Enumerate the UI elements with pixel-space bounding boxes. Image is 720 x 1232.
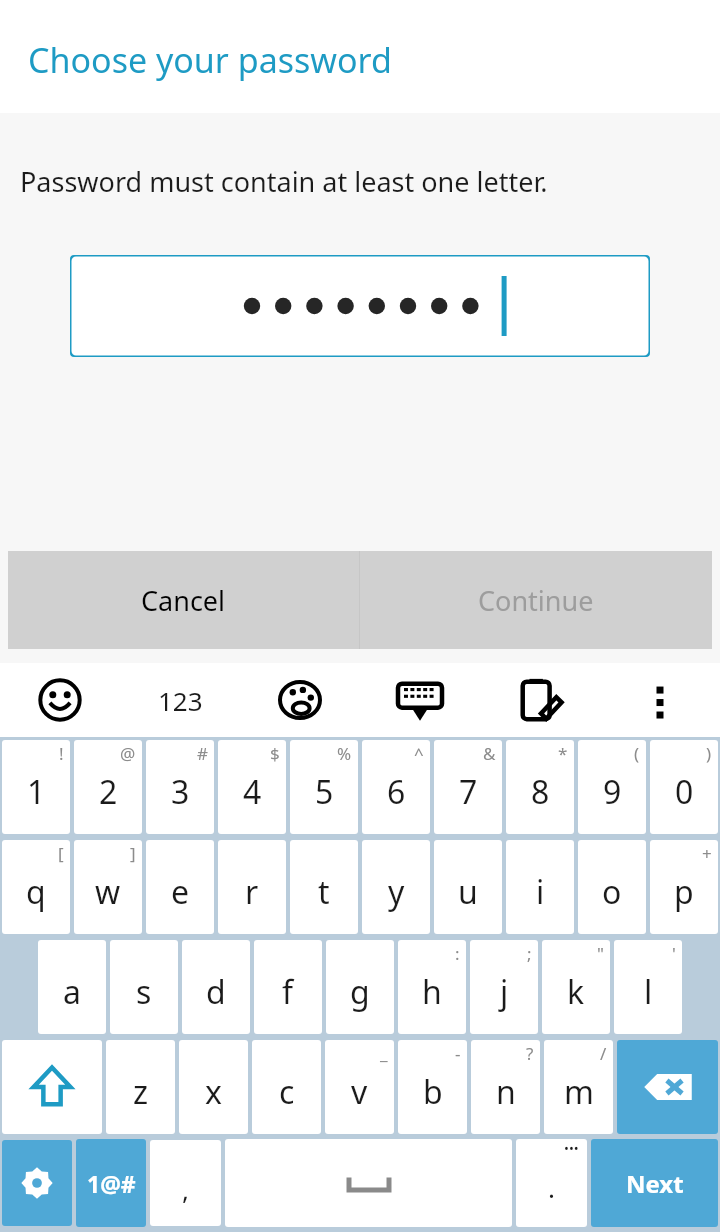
staticText: [: [58, 842, 64, 865]
staticText: ^: [414, 742, 424, 765]
staticText: f: [282, 970, 294, 1014]
staticText: @: [120, 742, 136, 765]
staticText: 2: [99, 770, 118, 814]
staticText: /: [600, 1042, 607, 1065]
staticText: y: [388, 870, 405, 914]
staticText: 9: [603, 770, 622, 814]
button[interactable]: 1: [2, 740, 70, 834]
staticText: !: [59, 742, 64, 765]
button[interactable]: 2: [74, 740, 142, 834]
staticText: 6: [387, 770, 406, 814]
button[interactable]: z: [106, 1040, 175, 1134]
staticText: w: [95, 870, 121, 914]
staticText: 5: [315, 770, 334, 814]
button[interactable]: 3: [146, 740, 214, 834]
staticText: ]: [130, 842, 136, 865]
staticText: 7: [459, 770, 478, 814]
staticText: $: [270, 742, 280, 765]
staticText: j: [500, 970, 509, 1014]
staticText: #: [197, 742, 208, 765]
button[interactable]: Hide keyboard: [360, 663, 480, 737]
staticText: k: [567, 970, 585, 1014]
button[interactable]: v: [325, 1040, 394, 1134]
staticText: ': [672, 942, 676, 965]
staticText: t: [318, 870, 330, 914]
button[interactable]: l: [614, 940, 682, 1034]
button[interactable]: w: [74, 840, 142, 934]
button[interactable]: 8: [506, 740, 574, 834]
button[interactable]: h: [398, 940, 466, 1034]
button[interactable]: k: [542, 940, 610, 1034]
staticText: 4: [243, 770, 262, 814]
button[interactable]: s: [110, 940, 178, 1034]
button[interactable]: More options: [600, 663, 720, 737]
staticText: r: [245, 870, 259, 914]
staticText: +: [702, 842, 712, 865]
button[interactable]: b: [398, 1040, 467, 1134]
button[interactable]: d: [182, 940, 250, 1034]
button[interactable]: n: [471, 1040, 540, 1134]
button[interactable]: r: [218, 840, 286, 934]
button[interactable]: Emoji: [0, 663, 120, 737]
staticText: 0: [675, 770, 694, 814]
button[interactable]: j: [470, 940, 538, 1034]
button[interactable]: c: [252, 1040, 321, 1134]
staticText: l: [644, 970, 653, 1014]
button[interactable]: Next: [591, 1139, 718, 1227]
button[interactable]: t: [290, 840, 358, 934]
button[interactable]: 5: [290, 740, 358, 834]
staticText: x: [205, 1070, 222, 1114]
button[interactable]: .: [516, 1139, 587, 1227]
button[interactable]: 7: [434, 740, 502, 834]
staticText: o: [602, 870, 622, 914]
staticText: ?: [526, 1042, 534, 1065]
staticText: b: [423, 1070, 443, 1114]
staticText: Choose your password: [28, 37, 392, 83]
button[interactable]: Backspace: [617, 1040, 718, 1134]
staticText: h: [422, 970, 442, 1014]
button[interactable]: 1@#: [76, 1139, 146, 1227]
button[interactable]: [225, 1139, 512, 1227]
staticText: g: [350, 970, 370, 1014]
button[interactable]: m: [544, 1040, 613, 1134]
staticText: 1: [27, 770, 46, 814]
button[interactable]: i: [506, 840, 574, 934]
staticText: -: [455, 1042, 461, 1065]
staticText: (: [634, 742, 640, 765]
button[interactable]: p: [650, 840, 718, 934]
button[interactable]: g: [326, 940, 394, 1034]
staticText: Cancel: [141, 582, 226, 619]
button[interactable]: Cancel: [8, 551, 359, 649]
button[interactable]: q: [2, 840, 70, 934]
staticText: 8: [531, 770, 550, 814]
button[interactable]: f: [254, 940, 322, 1034]
staticText: %: [337, 742, 352, 765]
staticText: ,: [182, 1172, 189, 1207]
staticText: Password must contain at least one lette…: [20, 163, 548, 200]
button[interactable]: 0: [650, 740, 718, 834]
button[interactable]: o: [578, 840, 646, 934]
button[interactable]: ,: [150, 1140, 221, 1226]
staticText: z: [133, 1070, 149, 1114]
button[interactable]: Themes: [240, 663, 360, 737]
button[interactable]: y: [362, 840, 430, 934]
staticText: e: [171, 870, 190, 914]
button[interactable]: 9: [578, 740, 646, 834]
button[interactable]: u: [434, 840, 502, 934]
staticText: ): [706, 742, 712, 765]
button[interactable]: a: [38, 940, 106, 1034]
button[interactable]: e: [146, 840, 214, 934]
button[interactable]: Settings: [2, 1140, 72, 1226]
staticText: •••: [564, 1139, 579, 1157]
button[interactable]: 6: [362, 740, 430, 834]
staticText: s: [136, 970, 152, 1014]
button[interactable]: [70, 255, 650, 357]
staticText: ": [597, 942, 604, 965]
button[interactable]: x: [179, 1040, 248, 1134]
button[interactable]: Continue: [360, 551, 712, 649]
button[interactable]: Shift: [2, 1040, 102, 1134]
button[interactable]: Clipboard: [480, 663, 600, 737]
button[interactable]: 4: [218, 740, 286, 834]
staticText: ;: [527, 942, 532, 965]
button[interactable]: 123: [120, 663, 240, 737]
